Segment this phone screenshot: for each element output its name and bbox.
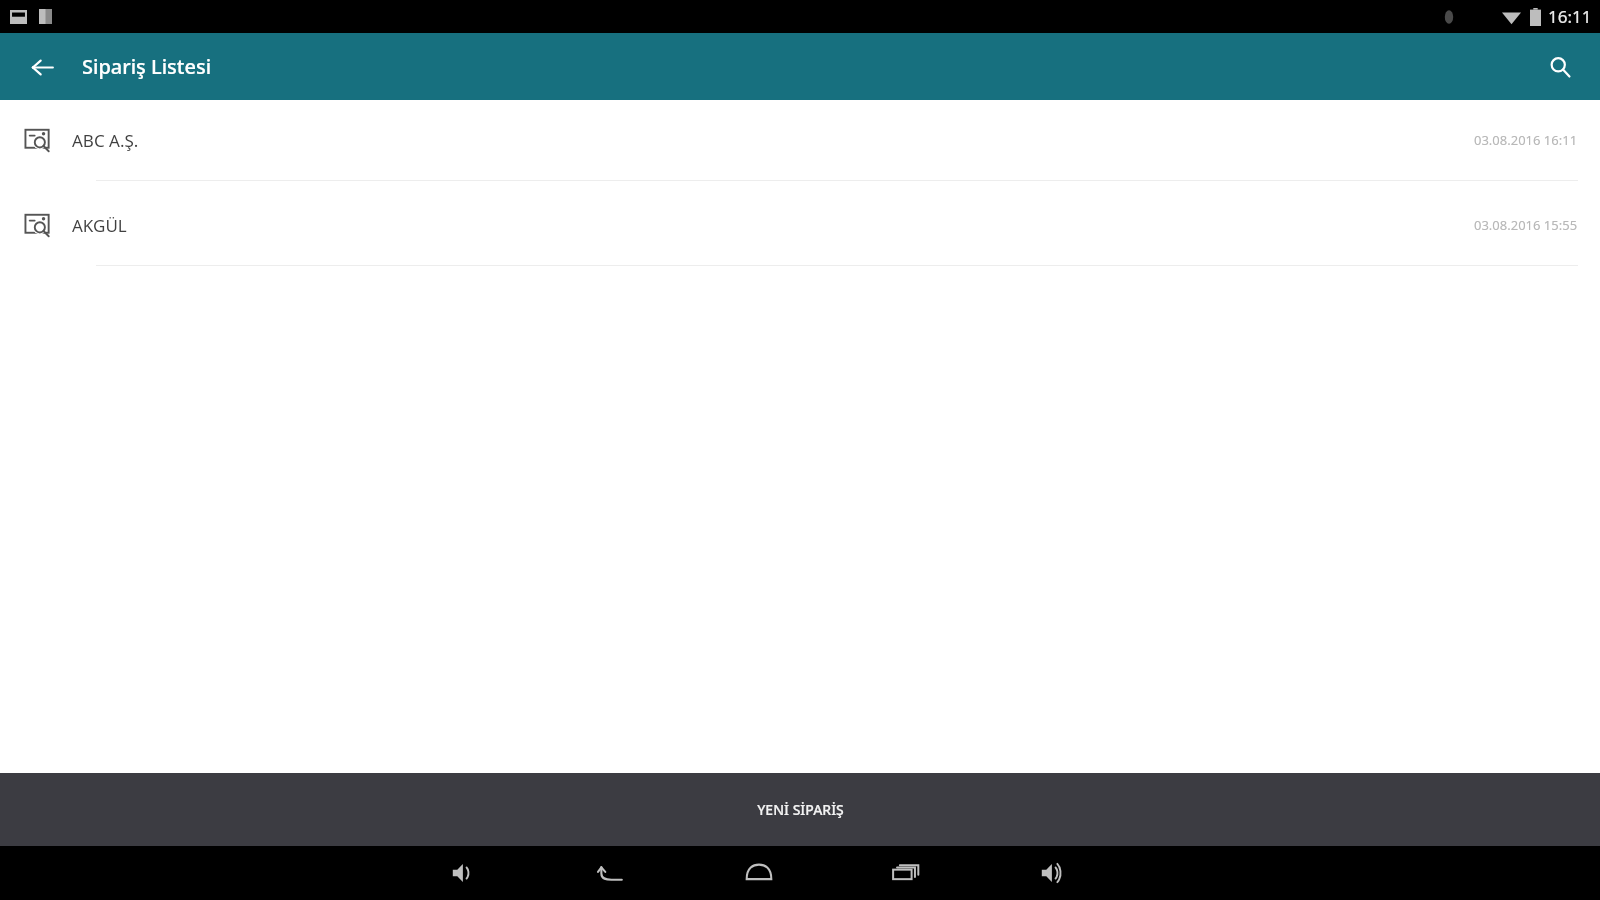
button[interactable]: Search (1538, 45, 1582, 89)
button[interactable]: Volume down (440, 849, 488, 897)
staticText: Sipariş Listesi (82, 53, 212, 80)
staticText: YENİ SİPARİŞ (757, 800, 844, 819)
button[interactable]: Home (735, 849, 783, 897)
button[interactable]: Recents (882, 849, 930, 897)
staticText: 03.08.2016 16:11 (1474, 131, 1578, 149)
button[interactable]: YENİ SİPARİŞ (0, 773, 1600, 846)
button[interactable]: AKGÜL (0, 185, 1600, 270)
button[interactable]: Volume up (1029, 849, 1077, 897)
staticText: AKGÜL (72, 214, 127, 237)
staticText: ABC A.Ş. (72, 129, 139, 152)
button[interactable]: Back (20, 45, 64, 89)
staticText: 16:11 (1548, 5, 1592, 28)
button[interactable]: Back (588, 849, 636, 897)
staticText: 03.08.2016 15:55 (1474, 216, 1578, 234)
button[interactable]: ABC A.Ş. (0, 100, 1600, 185)
